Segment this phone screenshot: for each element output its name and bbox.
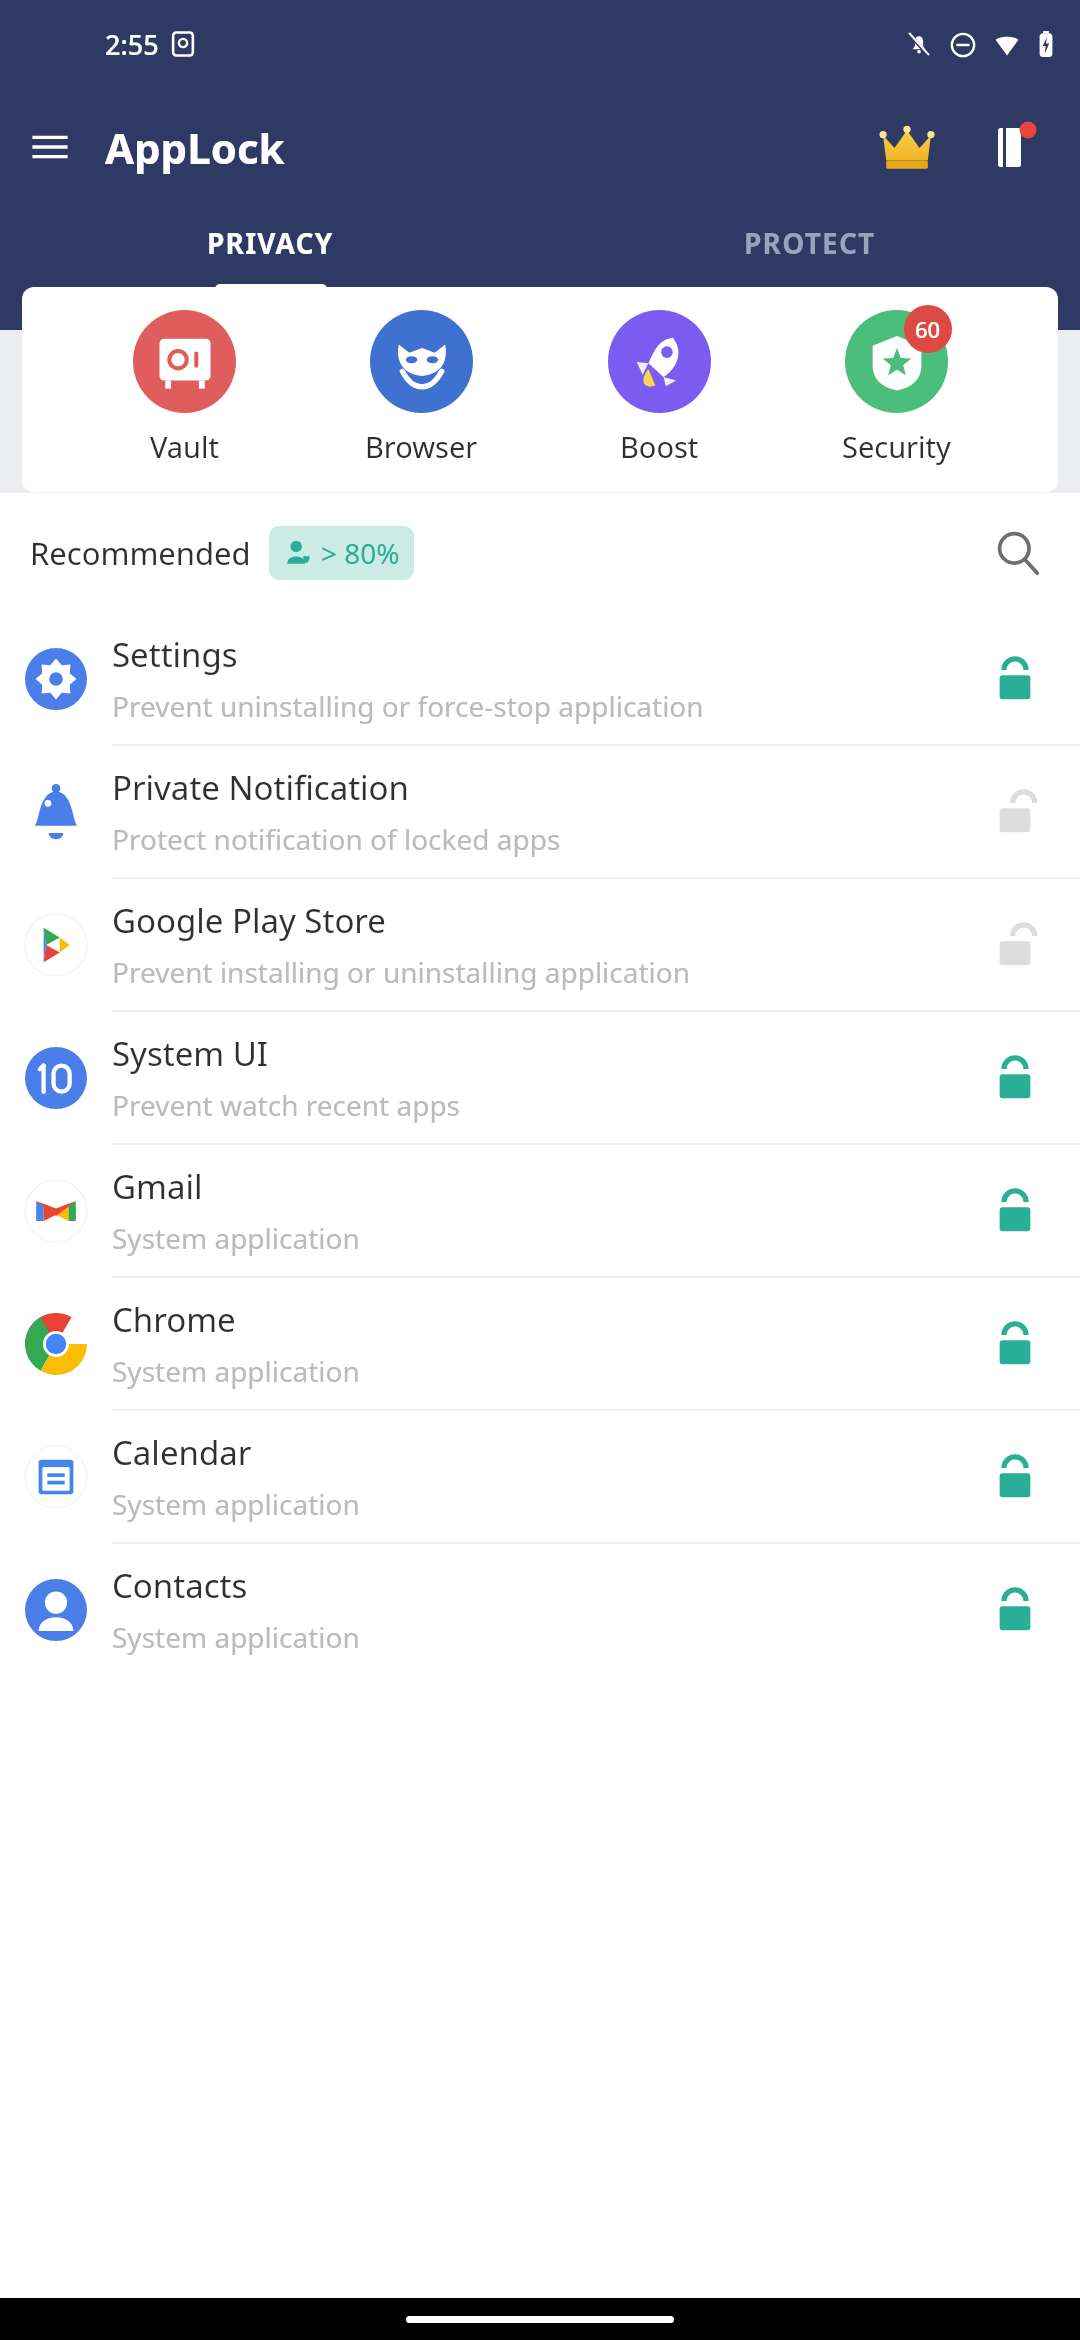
staticText: Calendar [112,1430,252,1475]
button[interactable]: Locked [950,1411,1080,1542]
button[interactable]: Private Notification [0,746,1080,877]
button[interactable]: Settings [0,613,1080,744]
staticText: Browser [365,427,478,466]
button[interactable]: Gmail [0,1145,1080,1276]
button[interactable]: Menu [18,115,82,179]
staticText: System application [112,1352,360,1390]
button[interactable]: Vault [109,305,259,466]
staticText: Prevent watch recent apps [112,1086,461,1124]
button[interactable]: Notifications [974,108,1052,186]
staticText: Chrome [112,1297,236,1342]
button[interactable]: Locked [950,1145,1080,1276]
button[interactable]: Unlocked [950,746,1080,877]
staticText: Prevent installing or uninstalling appli… [112,953,691,991]
staticText: System application [112,1618,360,1656]
staticText: > 80% [321,534,400,572]
button[interactable]: Contacts [0,1544,1080,1675]
button[interactable]: Locked [950,1278,1080,1409]
button[interactable]: Calendar [0,1411,1080,1542]
button[interactable]: 60 [821,305,971,466]
staticText: AppLock [105,119,285,176]
button[interactable]: Chrome [0,1278,1080,1409]
staticText: System UI [112,1031,269,1076]
button[interactable]: System UI [0,1012,1080,1143]
staticText: Security [842,427,951,466]
staticText: PROTECT [744,224,876,262]
staticText: PRIVACY [207,224,334,262]
staticText: Recommended [30,532,251,574]
staticText: Vault [150,427,219,466]
staticText: Private Notification [112,765,409,810]
button[interactable]: Unlocked [950,879,1080,1010]
button[interactable]: Google Play Store [0,879,1080,1010]
staticText: System application [112,1485,360,1523]
button[interactable]: PRIVACY [0,206,540,330]
button[interactable]: VIP [866,106,948,188]
button[interactable]: Locked [950,1544,1080,1675]
staticText: Boost [620,427,699,466]
button[interactable]: Browser [346,305,496,466]
staticText: System application [112,1219,360,1257]
button[interactable]: Boost [584,305,734,466]
button[interactable]: PROTECT [540,206,1080,330]
staticText: Contacts [112,1563,248,1608]
staticText: Prevent uninstalling or force-stop appli… [112,687,704,725]
staticText: 2:55 [105,26,159,63]
staticText: Settings [112,632,238,677]
button[interactable]: Locked [950,1012,1080,1143]
button[interactable]: Search [980,515,1056,591]
staticText: 60 [915,314,941,344]
staticText: Protect notification of locked apps [112,820,561,858]
staticText: Gmail [112,1164,203,1209]
staticText: Google Play Store [112,898,386,943]
button[interactable]: Locked [950,613,1080,744]
